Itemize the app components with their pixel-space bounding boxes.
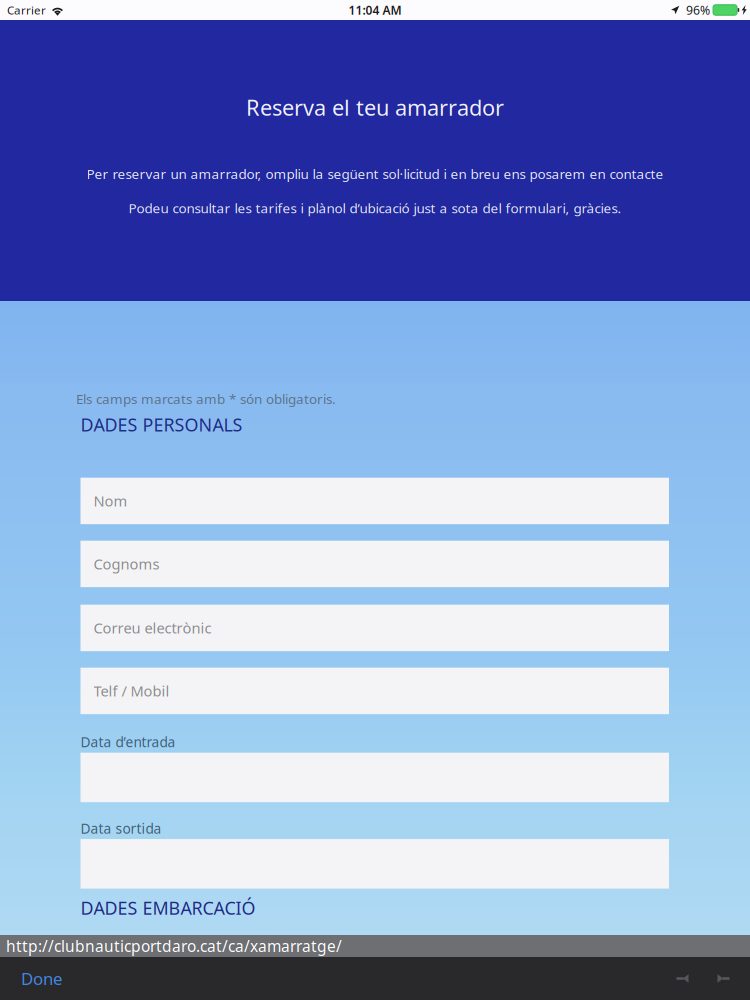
staticText: DADES EMBARCACIÓ bbox=[80, 896, 255, 920]
staticText: Nom bbox=[93, 491, 127, 511]
staticText: 11:04 AM bbox=[348, 2, 401, 18]
staticText: Per reservar un amarrador, ompliu la seg… bbox=[86, 165, 663, 183]
button[interactable]: Cognoms bbox=[80, 541, 669, 587]
staticText: Data d’entrada bbox=[80, 733, 175, 751]
button[interactable]: Previous field bbox=[662, 957, 703, 1000]
staticText: 96% bbox=[686, 2, 710, 18]
staticText: Telf / Mobil bbox=[93, 681, 169, 701]
staticText: Correu electrònic bbox=[93, 618, 211, 638]
button[interactable]: Done bbox=[7, 957, 76, 1000]
staticText: Data sortida bbox=[80, 819, 161, 838]
staticText: http://clubnauticportdaro.cat/ca/xamarra… bbox=[6, 935, 342, 957]
button[interactable]: Nom bbox=[80, 478, 669, 524]
staticText: Podeu consultar les tarifes i plànol d’u… bbox=[128, 199, 621, 217]
button[interactable]: Correu electrònic bbox=[80, 605, 669, 651]
staticText: Done bbox=[21, 967, 62, 990]
button[interactable]: Telf / Mobil bbox=[80, 668, 669, 714]
button[interactable]: Next field bbox=[703, 957, 744, 1000]
staticText: Carrier bbox=[7, 2, 46, 18]
staticText: DADES PERSONALS bbox=[80, 412, 242, 437]
staticText: Reserva el teu amarrador bbox=[246, 93, 504, 122]
staticText: Cognoms bbox=[93, 554, 159, 574]
staticText: Els camps marcats amb * són obligatoris. bbox=[76, 390, 336, 408]
button[interactable]: Data sortida bbox=[80, 839, 669, 889]
